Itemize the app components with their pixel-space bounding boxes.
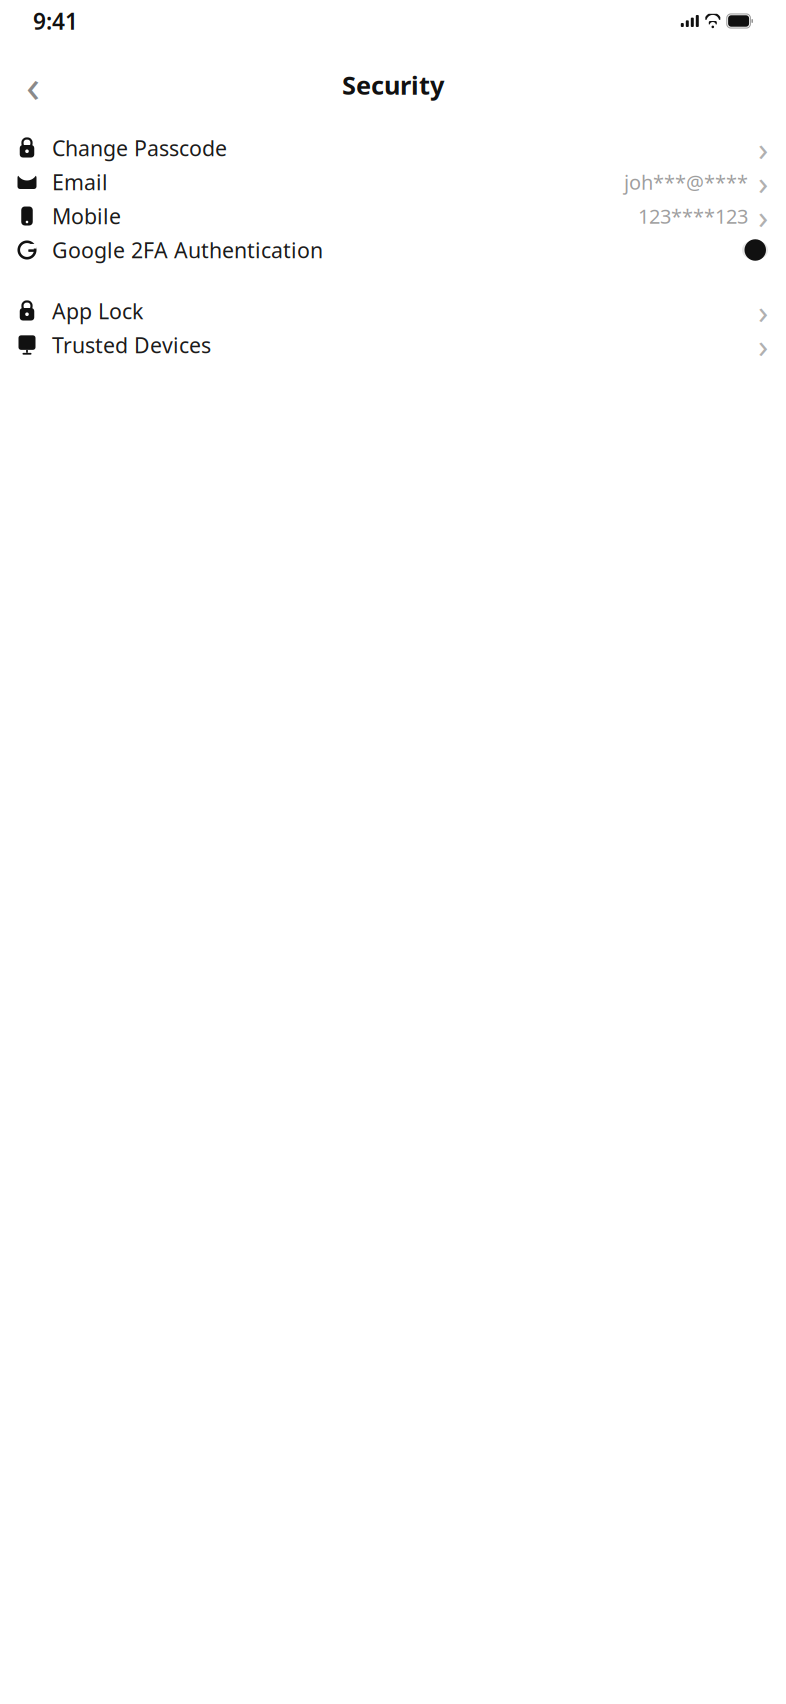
button[interactable]: App Lock bbox=[0, 294, 786, 328]
button[interactable]: Back bbox=[11, 63, 55, 107]
button[interactable]: Email bbox=[0, 165, 786, 199]
staticText: 9:41 bbox=[33, 6, 78, 36]
staticText: › bbox=[758, 323, 768, 367]
staticText: Google 2FA Authentication bbox=[52, 236, 323, 264]
staticText: ‹ bbox=[26, 55, 40, 115]
staticText: Email bbox=[52, 168, 108, 196]
staticText: joh***@**** bbox=[624, 169, 748, 195]
staticText: › bbox=[758, 194, 768, 238]
staticText: Change Passcode bbox=[52, 134, 227, 162]
button[interactable]: Change Passcode bbox=[0, 131, 786, 165]
staticText: Mobile bbox=[52, 202, 121, 230]
staticText: App Lock bbox=[52, 297, 143, 325]
staticText: › bbox=[758, 289, 768, 333]
staticText: Security bbox=[342, 68, 444, 102]
staticText: › bbox=[758, 126, 768, 170]
staticText: 123****123 bbox=[638, 203, 748, 229]
staticText: Trusted Devices bbox=[52, 331, 211, 359]
button[interactable]: Mobile bbox=[0, 199, 786, 233]
button[interactable]: Google 2FA Authentication bbox=[0, 233, 786, 267]
button[interactable]: Trusted Devices bbox=[0, 328, 786, 362]
staticText: › bbox=[758, 160, 768, 204]
